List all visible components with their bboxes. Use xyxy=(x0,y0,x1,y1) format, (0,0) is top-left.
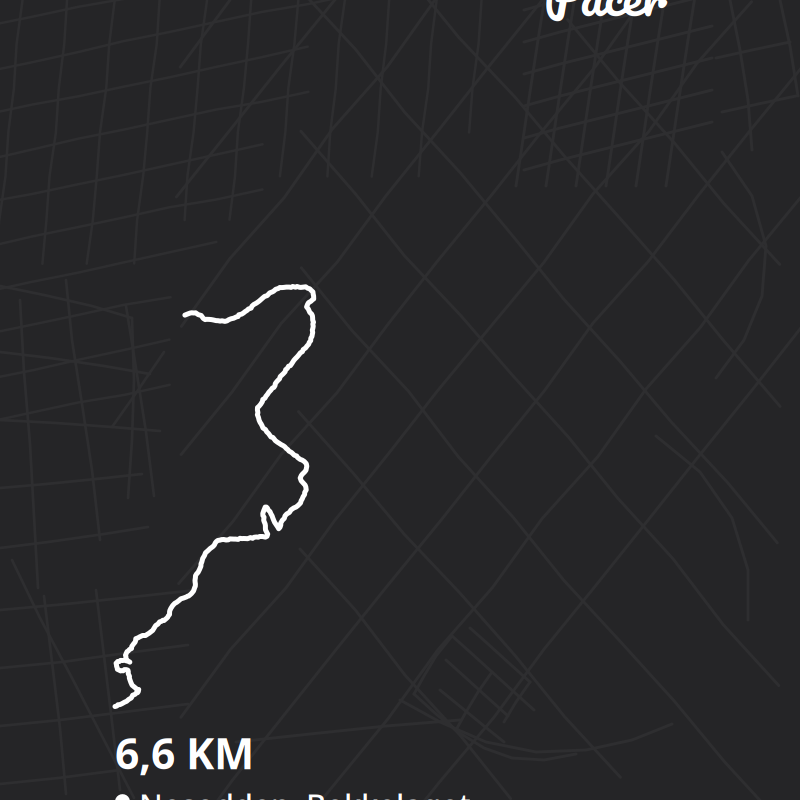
button[interactable]: 6,6 KM xyxy=(115,724,254,781)
button[interactable]: Nesodden, Bekkelaget xyxy=(115,784,471,800)
staticText: Nesodden, Bekkelaget xyxy=(139,784,471,800)
staticText: 6,6 KM xyxy=(115,724,254,781)
staticText: Pacer xyxy=(544,0,667,39)
button[interactable]: Pacer xyxy=(544,0,667,39)
